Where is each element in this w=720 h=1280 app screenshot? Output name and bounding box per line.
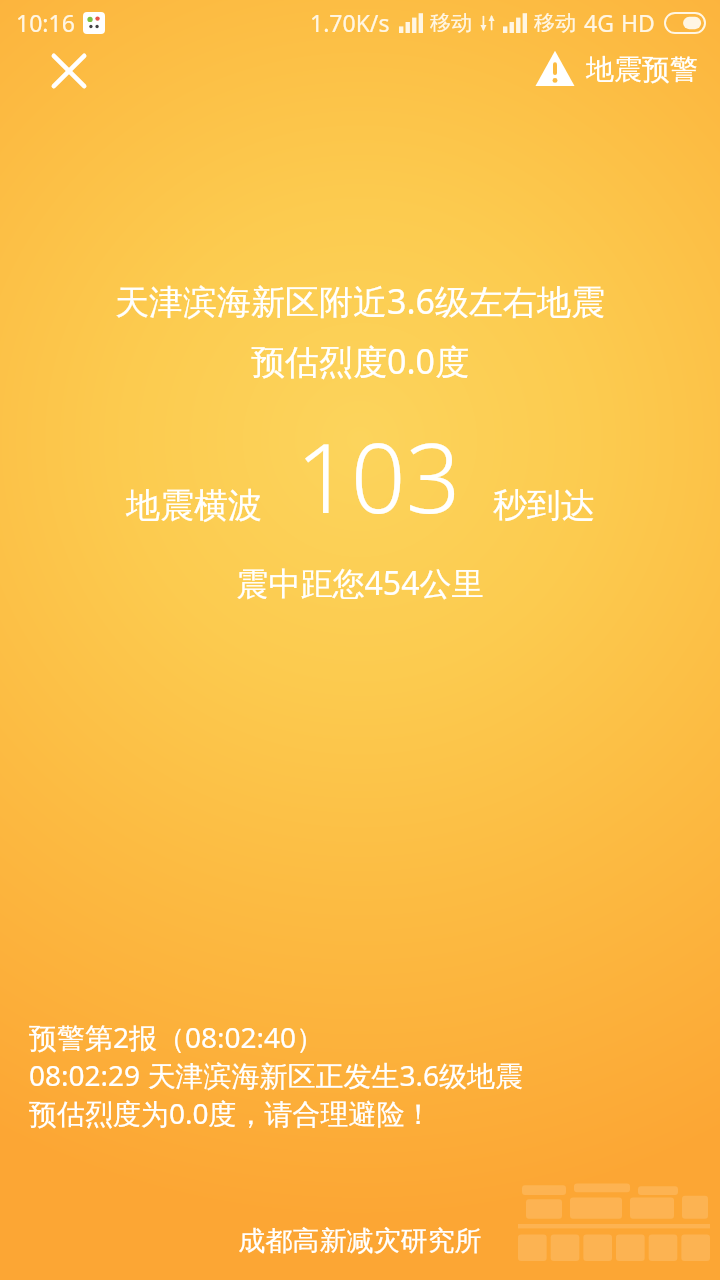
staticText: 成都高新减灾研究所 xyxy=(0,1224,720,1258)
staticText: HD xyxy=(621,7,655,38)
staticText: 地震预警 xyxy=(586,52,698,87)
staticText: 秒到达 xyxy=(493,484,595,527)
staticText: 1.70K/s xyxy=(310,7,390,38)
staticText: 预估烈度0.0度 xyxy=(0,338,720,384)
staticText: 103 xyxy=(296,410,461,541)
staticText: 天津滨海新区附近3.6级左右地震 xyxy=(0,278,720,324)
staticText: 移动 xyxy=(430,10,472,36)
staticText: 震中距您454公里 xyxy=(0,561,720,605)
staticText: 移动 xyxy=(534,10,576,36)
staticText: 预估烈度为0.0度，请合理避险！ xyxy=(29,1094,433,1132)
staticText: 地震横波 xyxy=(126,484,262,527)
button[interactable]: 地震预警 xyxy=(534,50,698,88)
staticText: 10:16 xyxy=(16,7,75,38)
staticText: 4G xyxy=(584,7,614,38)
staticText: 08:02:29 天津滨海新区正发生3.6级地震 xyxy=(29,1056,523,1094)
staticText: 预警第2报（08:02:40） xyxy=(29,1018,325,1056)
button[interactable]: 关闭 xyxy=(41,43,97,99)
